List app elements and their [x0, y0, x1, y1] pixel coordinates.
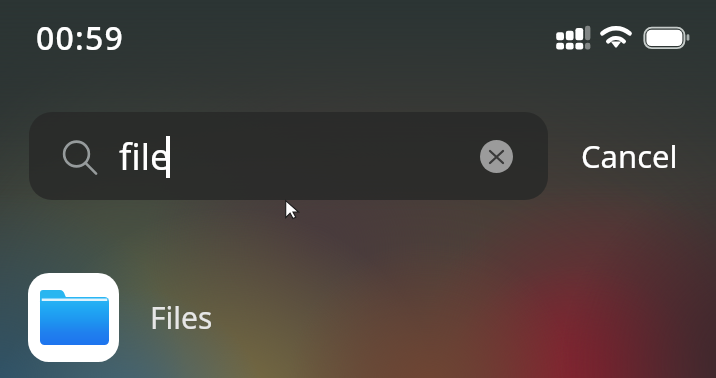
- staticText: Cancel: [581, 135, 678, 177]
- staticText: file: [119, 132, 171, 181]
- button[interactable]: Cancel: [570, 122, 688, 190]
- button[interactable]: Files: [0, 261, 716, 373]
- staticText: Files: [150, 297, 213, 338]
- staticText: 00:59: [36, 16, 124, 60]
- button[interactable]: file: [29, 112, 548, 200]
- button[interactable]: Clear: [480, 140, 513, 173]
